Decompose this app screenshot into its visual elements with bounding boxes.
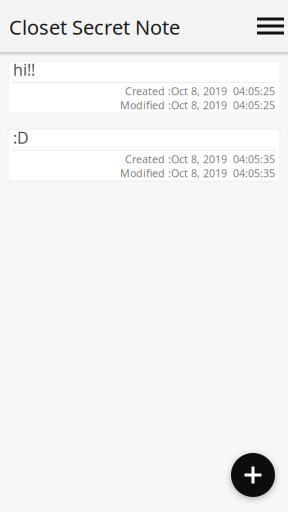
staticText: Created :Oct 8, 2019 04:05:35 bbox=[125, 152, 275, 166]
button[interactable]: hi!! bbox=[8, 61, 280, 113]
button[interactable]: Menu bbox=[243, 5, 288, 46]
staticText: Modified :Oct 8, 2019 04:05:25 bbox=[120, 98, 275, 112]
staticText: Modified :Oct 8, 2019 04:05:35 bbox=[120, 166, 275, 180]
staticText: hi!! bbox=[13, 59, 35, 80]
staticText: Closet Secret Note bbox=[9, 14, 180, 40]
button[interactable]: New note bbox=[231, 453, 275, 497]
staticText: Created :Oct 8, 2019 04:05:25 bbox=[125, 84, 275, 98]
staticText: :D bbox=[13, 127, 29, 148]
button[interactable]: :D bbox=[8, 129, 280, 181]
